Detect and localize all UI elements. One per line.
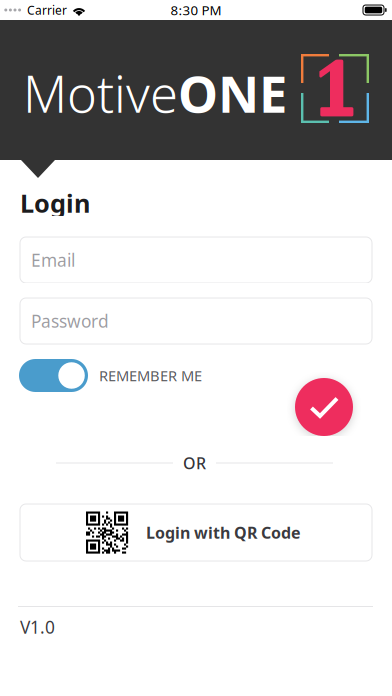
staticText: REMEMBER ME bbox=[99, 366, 202, 385]
button[interactable]: Login with QR Code bbox=[0, 504, 392, 561]
staticText: OR bbox=[183, 452, 206, 474]
button[interactable]: Sign in bbox=[295, 378, 353, 436]
button[interactable]: Password bbox=[0, 298, 392, 344]
staticText: Password bbox=[31, 309, 109, 332]
staticText: V1.0 bbox=[20, 615, 55, 638]
staticText: Carrier bbox=[27, 2, 67, 18]
button[interactable]: REMEMBER ME bbox=[19, 359, 202, 392]
staticText: Motive bbox=[23, 59, 178, 127]
staticText: Login with QR Code bbox=[146, 522, 301, 543]
staticText: 8:30 PM bbox=[170, 1, 221, 19]
staticText: ONE bbox=[178, 59, 287, 127]
staticText: Email bbox=[31, 248, 75, 271]
staticText: Login bbox=[20, 186, 90, 220]
button[interactable]: Email bbox=[0, 237, 392, 283]
